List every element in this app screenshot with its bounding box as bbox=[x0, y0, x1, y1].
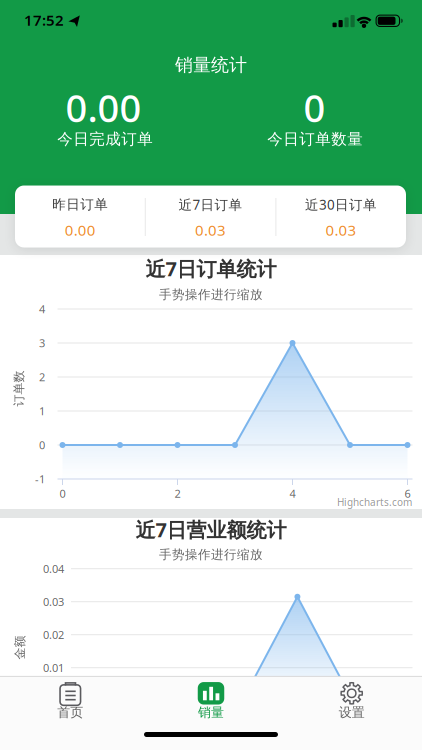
button[interactable]: 设置 bbox=[287, 676, 417, 730]
button[interactable]: 首页 bbox=[5, 676, 135, 730]
staticText: 近7日订单统计 bbox=[145, 255, 276, 282]
staticText: 6 bbox=[404, 486, 410, 501]
staticText: 4 bbox=[289, 486, 295, 501]
staticText: 手势操作进行缩放 bbox=[159, 287, 263, 302]
staticText: 0.04 bbox=[43, 561, 64, 576]
staticText: 0 bbox=[39, 437, 45, 452]
staticText: 销量统计 bbox=[175, 54, 247, 76]
staticText: 0.02 bbox=[43, 627, 64, 642]
staticText: 17:52 bbox=[24, 10, 64, 30]
staticText: 0.00 bbox=[65, 220, 96, 240]
staticText: 近7日营业额统计 bbox=[135, 516, 286, 543]
staticText: 今日完成订单 bbox=[57, 129, 153, 149]
staticText: 2 bbox=[174, 486, 180, 501]
staticText: 近30日订单 bbox=[305, 195, 377, 214]
staticText: 1 bbox=[39, 403, 45, 418]
staticText: 手势操作进行缩放 bbox=[159, 547, 263, 562]
staticText: 2 bbox=[39, 369, 45, 384]
staticText: 设置 bbox=[339, 704, 365, 721]
staticText: 订单数 bbox=[1, 381, 37, 396]
staticText: 4 bbox=[39, 301, 45, 316]
staticText: -1 bbox=[35, 471, 45, 486]
staticText: 0.03 bbox=[195, 220, 226, 240]
staticText: 0.00 bbox=[65, 82, 141, 133]
button[interactable]: 销量 bbox=[146, 676, 276, 730]
staticText: 0 bbox=[303, 82, 325, 133]
staticText: 3 bbox=[39, 335, 45, 350]
staticText: 0 bbox=[59, 486, 65, 501]
staticText: 销量 bbox=[198, 704, 224, 721]
staticText: 首页 bbox=[57, 704, 83, 721]
staticText: 0.01 bbox=[43, 660, 64, 675]
staticText: 金额 bbox=[8, 640, 32, 655]
staticText: 0.03 bbox=[43, 594, 64, 609]
staticText: 今日订单数量 bbox=[267, 129, 363, 149]
staticText: Highcharts.com bbox=[337, 495, 412, 509]
staticText: 0.03 bbox=[326, 220, 357, 240]
staticText: 昨日订单 bbox=[52, 196, 108, 213]
staticText: 近7日订单 bbox=[179, 195, 243, 214]
